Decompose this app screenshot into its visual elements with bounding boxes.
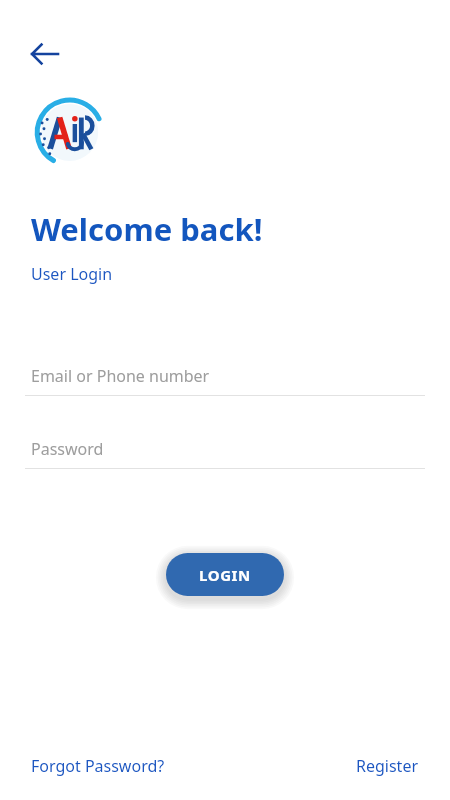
button[interactable]: Register [350,750,425,782]
staticText: Forgot Password? [31,755,165,777]
button[interactable]: LOGIN [166,553,284,596]
button[interactable]: Forgot Password? [25,750,171,782]
staticText: LOGIN [199,565,251,585]
button[interactable]: Back [30,32,74,76]
staticText: Welcome back! [31,208,263,250]
staticText: Password [31,438,104,460]
button[interactable]: Email or Phone number [25,356,425,396]
button[interactable]: Password [25,429,425,469]
staticText: Email or Phone number [31,365,210,387]
staticText: Register [356,755,419,777]
staticText: User Login [31,263,113,285]
